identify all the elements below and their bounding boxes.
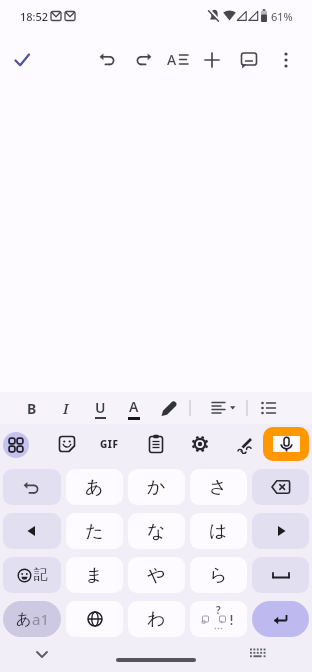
button[interactable]: [138, 426, 174, 462]
button[interactable]: [254, 392, 282, 424]
button[interactable]: [192, 40, 232, 80]
button[interactable]: さ: [190, 469, 247, 505]
button[interactable]: [229, 40, 269, 80]
staticText: B: [27, 399, 37, 418]
staticText: U: [95, 398, 106, 417]
staticText: わ: [147, 608, 166, 631]
button[interactable]: [263, 427, 309, 461]
button[interactable]: [204, 392, 240, 424]
staticText: た: [85, 520, 104, 543]
staticText: A: [167, 50, 177, 69]
staticText: a1: [32, 609, 49, 629]
button[interactable]: な: [128, 513, 185, 549]
button[interactable]: I: [52, 392, 80, 424]
button[interactable]: か: [128, 469, 185, 505]
staticText: あ: [85, 476, 104, 499]
button[interactable]: [154, 392, 182, 424]
staticText: あ: [16, 610, 32, 629]
button[interactable]: ?: [190, 601, 247, 637]
button[interactable]: [228, 426, 264, 462]
button[interactable]: [66, 601, 123, 637]
button[interactable]: 記: [3, 557, 61, 593]
button[interactable]: [27, 642, 57, 666]
button[interactable]: は: [190, 513, 247, 549]
button[interactable]: [3, 513, 61, 549]
button[interactable]: [2, 40, 42, 80]
staticText: GIF: [100, 437, 119, 451]
button[interactable]: [266, 40, 306, 80]
button[interactable]: ま: [66, 557, 123, 593]
button[interactable]: A: [158, 40, 198, 80]
button[interactable]: [252, 557, 309, 593]
button[interactable]: [3, 469, 61, 505]
staticText: か: [147, 476, 166, 499]
button[interactable]: わ: [128, 601, 185, 637]
button[interactable]: [123, 40, 163, 80]
button[interactable]: ら: [190, 557, 247, 593]
staticText: ら: [209, 564, 228, 587]
button[interactable]: [252, 469, 309, 505]
button[interactable]: [116, 658, 196, 662]
button[interactable]: [3, 432, 29, 458]
button[interactable]: あ: [66, 469, 123, 505]
staticText: ?: [216, 603, 221, 617]
button[interactable]: [88, 40, 128, 80]
button[interactable]: U: [86, 392, 114, 424]
button[interactable]: [243, 642, 273, 666]
button[interactable]: [49, 426, 85, 462]
button[interactable]: GIF: [93, 426, 126, 462]
button[interactable]: [252, 513, 309, 549]
staticText: 61%: [271, 9, 293, 24]
staticText: な: [147, 520, 166, 543]
staticText: ま: [85, 564, 104, 587]
button[interactable]: B: [18, 392, 46, 424]
button[interactable]: [182, 426, 218, 462]
staticText: A: [129, 397, 139, 416]
button[interactable]: や: [128, 557, 185, 593]
button[interactable]: A: [120, 392, 148, 424]
button[interactable]: [252, 601, 309, 637]
staticText: や: [147, 564, 166, 587]
staticText: I: [63, 399, 69, 418]
staticText: 記: [34, 566, 48, 584]
button[interactable]: た: [66, 513, 123, 549]
button[interactable]: あ: [3, 601, 61, 637]
staticText: 18:52: [20, 9, 49, 24]
staticText: は: [209, 520, 228, 543]
staticText: さ: [209, 476, 228, 499]
